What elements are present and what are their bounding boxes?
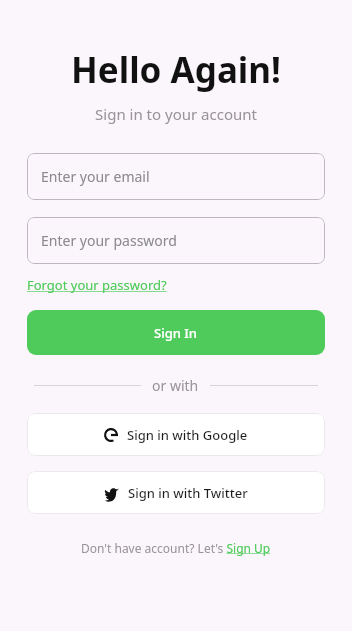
button[interactable]: Sign in with Twitter — [27, 471, 325, 514]
button[interactable]: Don't have account? Let's Sign Up — [81, 540, 271, 556]
staticText: or with — [152, 376, 199, 395]
staticText: Hello Again! — [0, 46, 352, 94]
staticText: Enter your password — [41, 231, 177, 250]
button[interactable]: Sign in with Google — [27, 413, 325, 456]
button[interactable]: Forgot your password? — [27, 276, 167, 294]
staticText: Sign In — [154, 324, 198, 342]
staticText: Enter your email — [41, 167, 150, 186]
staticText: Don't have account? Let's Sign Up — [81, 540, 271, 556]
staticText: Forgot your password? — [27, 276, 167, 294]
staticText: Sign in to your account — [0, 104, 352, 124]
button[interactable]: Enter your email — [27, 153, 325, 200]
button[interactable]: Enter your password — [27, 217, 325, 264]
staticText: Sign in with Twitter — [128, 484, 248, 502]
button[interactable]: Sign In — [27, 310, 325, 355]
staticText: Sign in with Google — [127, 426, 248, 444]
